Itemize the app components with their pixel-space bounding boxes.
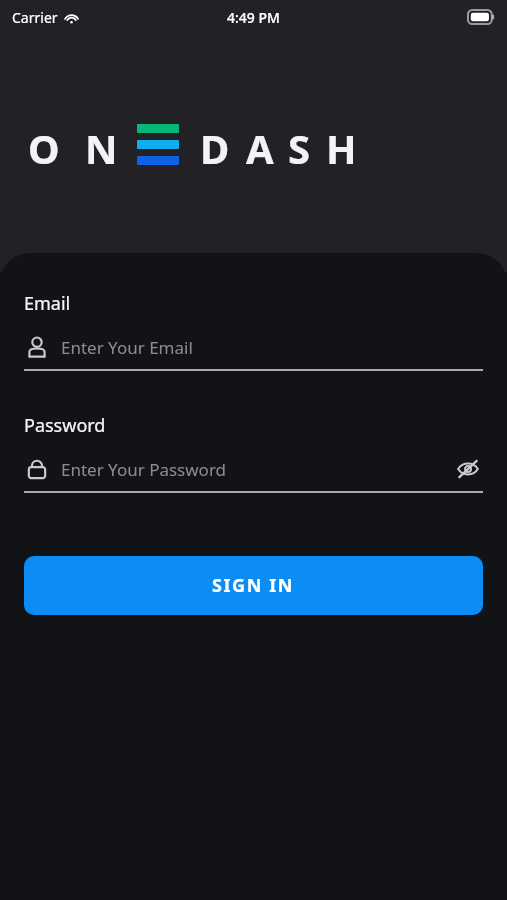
staticText: Enter Your Password bbox=[61, 458, 453, 481]
button[interactable]: Lock bbox=[24, 452, 483, 493]
button[interactable]: SIGN IN bbox=[24, 556, 483, 615]
staticText: N bbox=[85, 121, 118, 175]
staticText: SIGN IN bbox=[212, 573, 295, 598]
other: Person bbox=[25, 335, 49, 359]
staticText: D bbox=[200, 121, 230, 175]
staticText: Password bbox=[24, 413, 106, 438]
staticText: Enter Your Email bbox=[61, 336, 483, 359]
staticText: O bbox=[28, 121, 60, 175]
other: Lock bbox=[25, 457, 49, 481]
button[interactable]: Show password bbox=[453, 454, 483, 484]
staticText: H bbox=[326, 121, 357, 175]
staticText: S bbox=[288, 121, 311, 175]
staticText: Carrier bbox=[12, 8, 58, 27]
staticText: 4:49 PM bbox=[227, 8, 280, 27]
button[interactable]: Person bbox=[24, 330, 483, 371]
staticText: A bbox=[246, 121, 274, 175]
staticText: Email bbox=[24, 291, 71, 316]
